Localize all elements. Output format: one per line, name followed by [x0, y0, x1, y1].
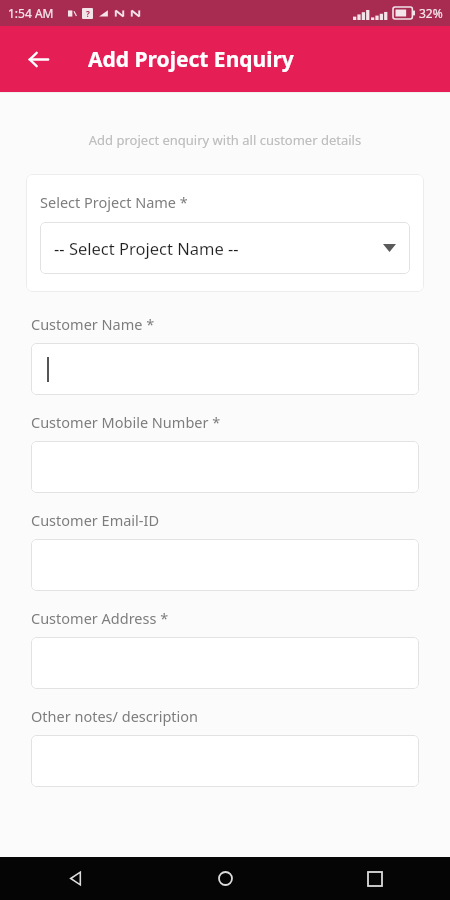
staticText: 32% — [419, 5, 443, 21]
staticText: ? — [86, 8, 90, 19]
button[interactable]: Home — [150, 857, 300, 900]
button[interactable] — [31, 539, 419, 591]
button[interactable] — [31, 735, 419, 787]
staticText: Customer Name * — [31, 314, 155, 334]
button[interactable] — [31, 637, 419, 689]
staticText: Customer Address * — [31, 608, 169, 628]
button[interactable] — [31, 343, 419, 395]
staticText: Customer Mobile Number * — [31, 412, 221, 432]
button[interactable]: Back — [16, 37, 60, 81]
staticText: Add project enquiry with all customer de… — [0, 131, 450, 149]
staticText: -- Select Project Name -- — [54, 237, 239, 259]
button[interactable] — [31, 441, 419, 493]
staticText: Customer Email-ID — [31, 510, 159, 530]
staticText: Add Project Enquiry — [88, 45, 294, 74]
button[interactable]: -- Select Project Name -- — [40, 222, 410, 274]
staticText: 1:54 AM — [8, 5, 54, 21]
staticText: Select Project Name * — [40, 192, 188, 212]
staticText: Other notes/ description — [31, 706, 199, 726]
button[interactable]: Recent apps — [300, 857, 450, 900]
button[interactable]: Back — [0, 857, 150, 900]
